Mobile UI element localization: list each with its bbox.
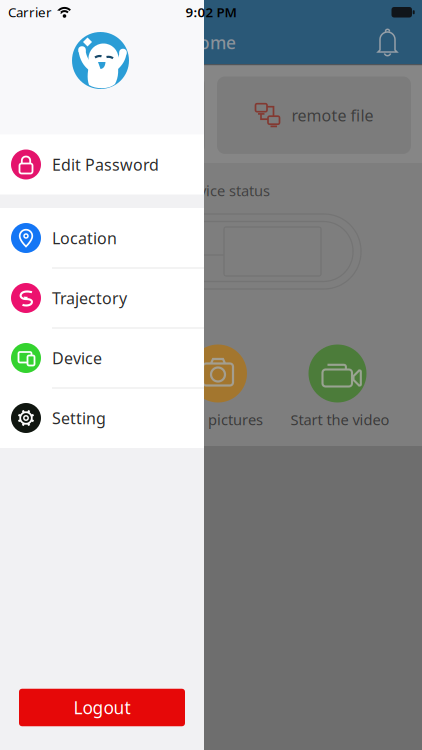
- staticText: Home: [186, 31, 236, 54]
- button[interactable]: Notifications: [365, 20, 409, 64]
- staticText: Trajectory: [52, 287, 127, 309]
- button[interactable]: Location: [0, 208, 204, 268]
- button[interactable]: local file: [12, 76, 205, 154]
- staticText: Location: [52, 227, 117, 249]
- button[interactable]: Trajectory: [0, 268, 204, 328]
- button[interactable]: Logout: [19, 689, 185, 726]
- staticText: remote file: [291, 105, 373, 126]
- staticText: Setting: [52, 407, 106, 429]
- staticText: Start the video: [290, 410, 389, 429]
- button[interactable]: remote file: [217, 76, 411, 154]
- button[interactable]: Setting: [0, 388, 204, 448]
- staticText: Carrier: [8, 3, 52, 21]
- staticText: Take pictures: [173, 410, 263, 429]
- button[interactable]: Take pictures: [189, 344, 247, 402]
- staticText: Logout: [73, 696, 130, 719]
- staticText: Device status: [180, 181, 270, 200]
- staticText: Device: [52, 347, 102, 369]
- staticText: 9:02 PM: [185, 3, 236, 21]
- button[interactable]: Device: [0, 328, 204, 388]
- staticText: Edit Password: [52, 154, 159, 175]
- button[interactable]: Start the video: [308, 344, 366, 402]
- button[interactable]: Edit Password: [0, 134, 204, 194]
